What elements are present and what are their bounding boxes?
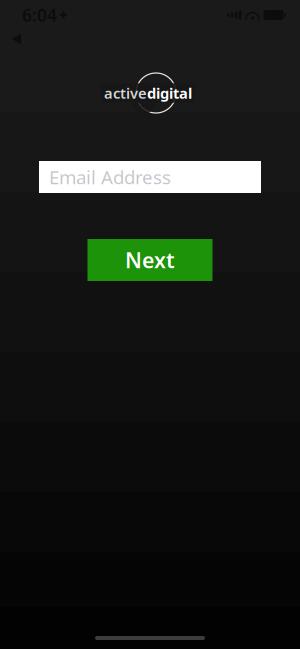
button[interactable]: Back (0, 26, 34, 52)
staticText: 6:04 (22, 3, 57, 26)
button[interactable]: Email Address (39, 161, 261, 193)
staticText: Email Address (49, 165, 171, 189)
staticText: active (104, 83, 147, 103)
staticText: Next (125, 246, 175, 274)
staticText: digital (147, 83, 192, 103)
button[interactable]: Next (87, 239, 212, 281)
